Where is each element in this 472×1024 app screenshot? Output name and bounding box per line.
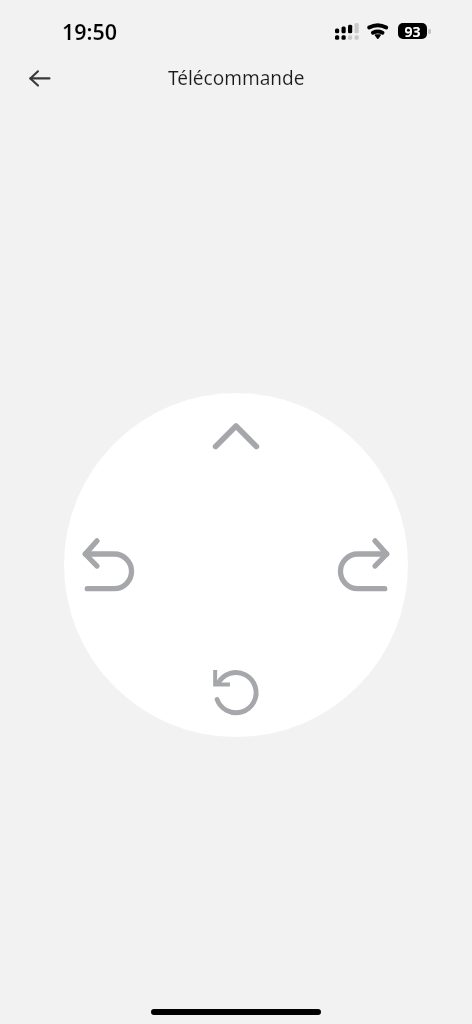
staticText: Télécommande [168,65,305,91]
staticText: 93 [404,23,421,38]
button[interactable]: Rétablir [332,532,396,596]
button[interactable]: Retour [11,56,59,102]
button[interactable]: Haut [204,412,268,476]
button[interactable]: Annuler [76,532,140,596]
button[interactable]: Réinitialiser [204,660,268,724]
staticText: 19:50 [62,17,118,46]
